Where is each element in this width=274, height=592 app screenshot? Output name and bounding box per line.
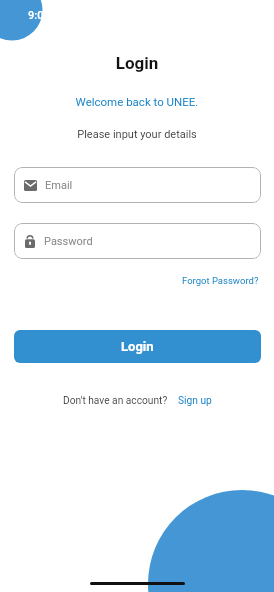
staticText: Password bbox=[44, 235, 93, 248]
staticText: Please input your details bbox=[0, 128, 274, 141]
button[interactable]: Password bbox=[14, 223, 261, 259]
staticText: Login bbox=[121, 339, 154, 354]
button[interactable]: Forgot Password? bbox=[182, 275, 259, 286]
button[interactable]: Sign up bbox=[178, 395, 212, 407]
staticText: Don't have an account? bbox=[63, 395, 168, 407]
button[interactable]: Email bbox=[14, 167, 261, 203]
staticText: Login bbox=[0, 53, 274, 73]
staticText: Welcome back to UNEE. bbox=[0, 95, 274, 108]
button[interactable]: Login bbox=[14, 330, 261, 363]
staticText: Email bbox=[45, 179, 73, 192]
staticText: 9:00 bbox=[28, 9, 50, 22]
